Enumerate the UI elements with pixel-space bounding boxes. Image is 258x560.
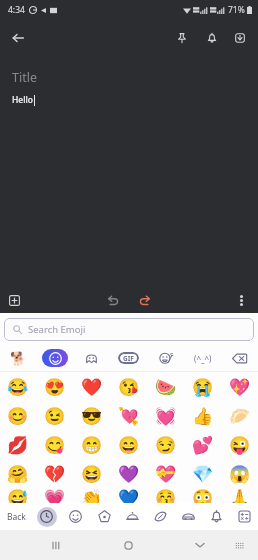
button[interactable]: 😄 [110,430,147,459]
staticText: 💖 [229,377,251,397]
button[interactable]: 🥟 [221,401,258,430]
staticText: 💗 [44,488,66,503]
button[interactable]: Undo [100,287,126,313]
staticText: 🍉 [155,377,177,397]
button[interactable]: 😭 [184,372,221,401]
button[interactable]: Objects [202,503,230,530]
staticText: 😂 [7,377,29,397]
button[interactable]: Travel [174,503,202,530]
button[interactable]: Search Emoji [4,318,254,341]
button[interactable]: 😅 [0,488,36,503]
button[interactable]: Emoji [36,345,73,371]
staticText: 🐕 [10,351,27,366]
button[interactable]: Home [111,530,145,560]
button[interactable]: 😜 [221,430,258,459]
button[interactable]: ❤️ [73,372,110,401]
button[interactable]: Set reminder [199,25,225,51]
staticText: 😉 [44,406,66,426]
button[interactable]: 😉 [36,401,73,430]
staticText: 🙏 [229,488,251,503]
staticText: Back [7,511,26,523]
button[interactable]: 💋 [0,430,36,459]
staticText: 😚 [155,488,177,503]
button[interactable]: Food [118,503,146,530]
button[interactable]: Activities [146,503,174,530]
staticText: 🥟 [229,406,251,426]
staticText: 👏 [81,488,103,503]
button[interactable]: 😚 [147,488,184,503]
staticText: 😏 [155,435,177,455]
button[interactable]: 🤗 [0,459,36,488]
button[interactable]: Recent apps [38,530,72,560]
button[interactable]: 😂 [0,372,36,401]
staticText: 😁 [81,435,103,455]
button[interactable]: 👍 [184,401,221,430]
button[interactable]: Backspace [221,345,258,371]
button[interactable]: 😊 [0,401,36,430]
button[interactable]: Pin note [169,25,195,51]
staticText: 💜 [118,464,140,484]
staticText: GIF [123,354,134,363]
button[interactable]: 💓 [147,401,184,430]
staticText: 💔 [44,464,66,484]
button[interactable]: Bitmoji [147,345,184,371]
staticText: 🤗 [7,464,29,484]
staticText: 💘 [118,406,140,426]
staticText: 😭 [192,377,214,397]
button[interactable]: Avatar [73,345,110,371]
staticText: 😋 [44,435,66,455]
button[interactable]: More options [228,287,254,313]
button[interactable]: 💕 [184,430,221,459]
staticText: (^_^) [194,353,212,364]
button[interactable]: 🙏 [221,488,258,503]
button[interactable]: GIF [110,345,147,371]
button[interactable]: Smileys [61,503,90,530]
button[interactable]: 💝 [147,459,184,488]
button[interactable]: 💘 [110,401,147,430]
button[interactable]: 💎 [184,459,221,488]
button[interactable]: 🍉 [147,372,184,401]
button[interactable]: Recents [32,503,61,530]
staticText: 😍 [44,377,66,397]
button[interactable]: Hide keyboard [183,530,217,560]
button[interactable]: Insert [1,287,27,313]
button[interactable]: 😘 [110,372,147,401]
button[interactable]: 😎 [73,401,110,430]
staticText: Title [12,69,37,86]
staticText: 71% [228,4,245,16]
button[interactable]: Back [0,503,32,530]
staticText: 😊 [7,406,29,426]
staticText: 😜 [229,435,251,455]
staticText: 💋 [7,435,29,455]
staticText: 😎 [81,406,103,426]
staticText: 😅 [7,488,29,503]
button[interactable]: Switch keyboard [222,530,256,560]
staticText: Search Emoji [28,323,86,336]
button[interactable]: Archive note [227,25,253,51]
staticText: 😱 [229,464,251,484]
staticText: 4:34 [8,4,25,16]
button[interactable]: 😁 [73,430,110,459]
button[interactable]: Symbols [230,503,258,530]
staticText: 😄 [118,435,140,455]
button[interactable]: Back [5,25,31,51]
staticText: 💕 [192,435,214,455]
button[interactable]: 😋 [36,430,73,459]
staticText: 😳 [192,488,214,503]
button[interactable]: 💜 [110,459,147,488]
button[interactable]: 😳 [184,488,221,503]
staticText: 💓 [155,406,177,426]
button[interactable]: Stickers [0,345,36,371]
button[interactable]: 💙 [110,488,147,503]
button[interactable]: Animals [90,503,118,530]
button[interactable]: Emoticons [184,345,221,371]
button[interactable]: 😏 [147,430,184,459]
button[interactable]: 👏 [73,488,110,503]
button[interactable]: 😱 [221,459,258,488]
button[interactable]: 💗 [36,488,73,503]
button[interactable]: 💔 [36,459,73,488]
button[interactable]: 😍 [36,372,73,401]
button[interactable]: Redo [132,287,158,313]
button[interactable]: 😆 [73,459,110,488]
button[interactable]: 💖 [221,372,258,401]
